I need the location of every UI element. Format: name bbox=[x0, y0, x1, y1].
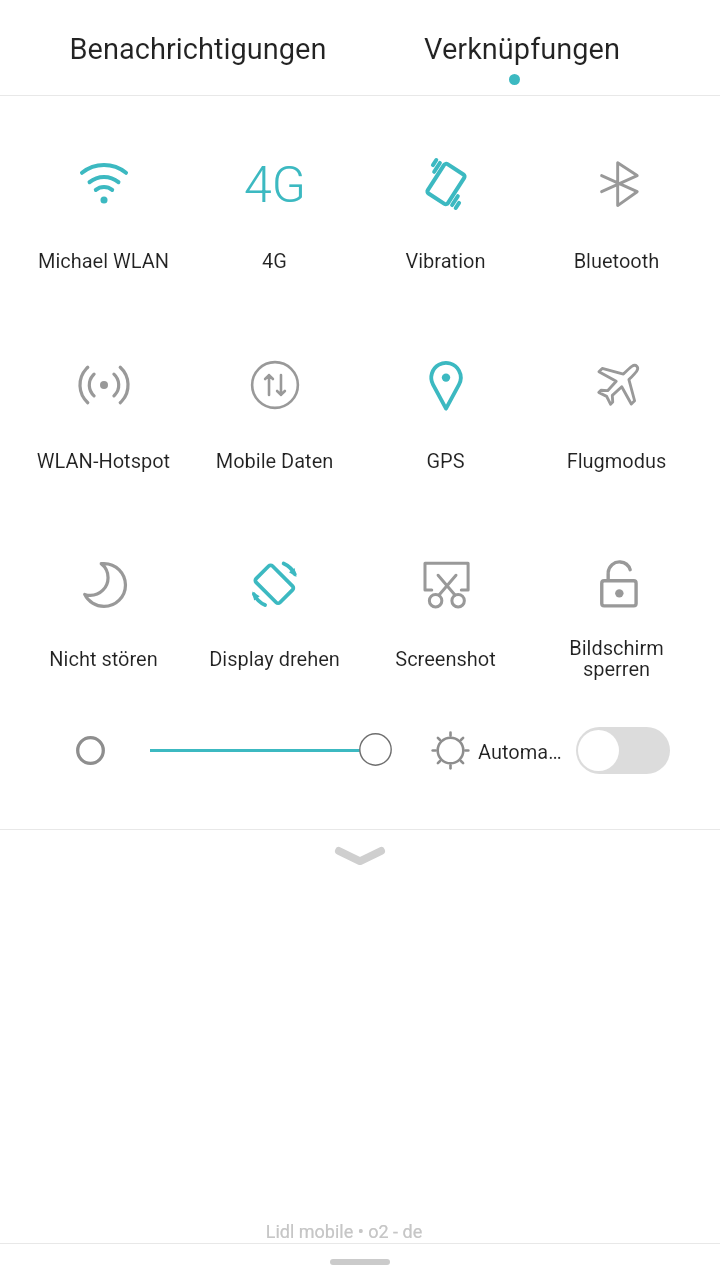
staticText: Screenshot bbox=[360, 647, 531, 670]
button[interactable]: Helligkeit bbox=[76, 736, 105, 765]
staticText: Benachrichtigungen bbox=[36, 32, 360, 66]
button[interactable]: Einklappen bbox=[0, 829, 720, 883]
button[interactable] bbox=[150, 749, 366, 752]
button[interactable]: Bildschirm sperren bbox=[531, 551, 702, 671]
staticText: Bildschirm sperren bbox=[531, 636, 702, 681]
button[interactable]: WLAN-Hotspot bbox=[18, 351, 189, 471]
staticText: Flugmodus bbox=[531, 449, 702, 472]
button[interactable]: Automatisch umschalten bbox=[576, 727, 670, 774]
staticText: 4G bbox=[189, 249, 360, 272]
staticText: Michael WLAN bbox=[18, 249, 189, 272]
button[interactable]: Michael WLAN bbox=[18, 150, 189, 270]
button[interactable]: Mobile Daten bbox=[189, 351, 360, 471]
button[interactable]: Verknüpfungen bbox=[360, 0, 684, 95]
button[interactable]: GPS bbox=[360, 351, 531, 471]
other: Einklappen bbox=[335, 847, 385, 865]
other: Automatische Helligkeit bbox=[432, 732, 469, 769]
button[interactable]: 4G bbox=[189, 150, 360, 270]
button[interactable]: Bluetooth bbox=[531, 150, 702, 270]
button[interactable]: Benachrichtigungen bbox=[36, 0, 360, 95]
staticText: Lidl mobile • o2 - de bbox=[0, 1221, 704, 1242]
button[interactable]: Nicht stören bbox=[18, 551, 189, 671]
staticText: Display drehen bbox=[189, 647, 360, 670]
staticText: 4G bbox=[244, 156, 306, 208]
staticText: GPS bbox=[360, 449, 531, 472]
staticText: WLAN-Hotspot bbox=[18, 449, 189, 472]
button[interactable]: Flugmodus bbox=[531, 351, 702, 471]
staticText: Verknüpfungen bbox=[360, 32, 684, 66]
staticText: Mobile Daten bbox=[189, 449, 360, 472]
staticText: Vibration bbox=[360, 249, 531, 272]
button[interactable]: Display drehen bbox=[189, 551, 360, 671]
button[interactable]: Vibration bbox=[360, 150, 531, 270]
staticText: Automa… bbox=[478, 740, 562, 763]
button[interactable]: Screenshot bbox=[360, 551, 531, 671]
staticText: Bluetooth bbox=[531, 249, 702, 272]
staticText: Nicht stören bbox=[18, 647, 189, 670]
